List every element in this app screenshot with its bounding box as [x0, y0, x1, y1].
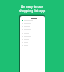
- button[interactable]: [22, 42, 28, 43]
- button[interactable]: [22, 39, 29, 40]
- button[interactable]: [22, 29, 31, 30]
- button[interactable]: [22, 45, 28, 46]
- staticText: An easy to use shopping list app: [0, 5, 64, 13]
- button[interactable]: [22, 26, 30, 27]
- button[interactable]: [22, 20, 33, 21]
- button[interactable]: [22, 33, 29, 34]
- button[interactable]: [22, 36, 31, 37]
- button[interactable]: Shopping list: [20, 16, 45, 72]
- button[interactable]: [22, 23, 31, 24]
